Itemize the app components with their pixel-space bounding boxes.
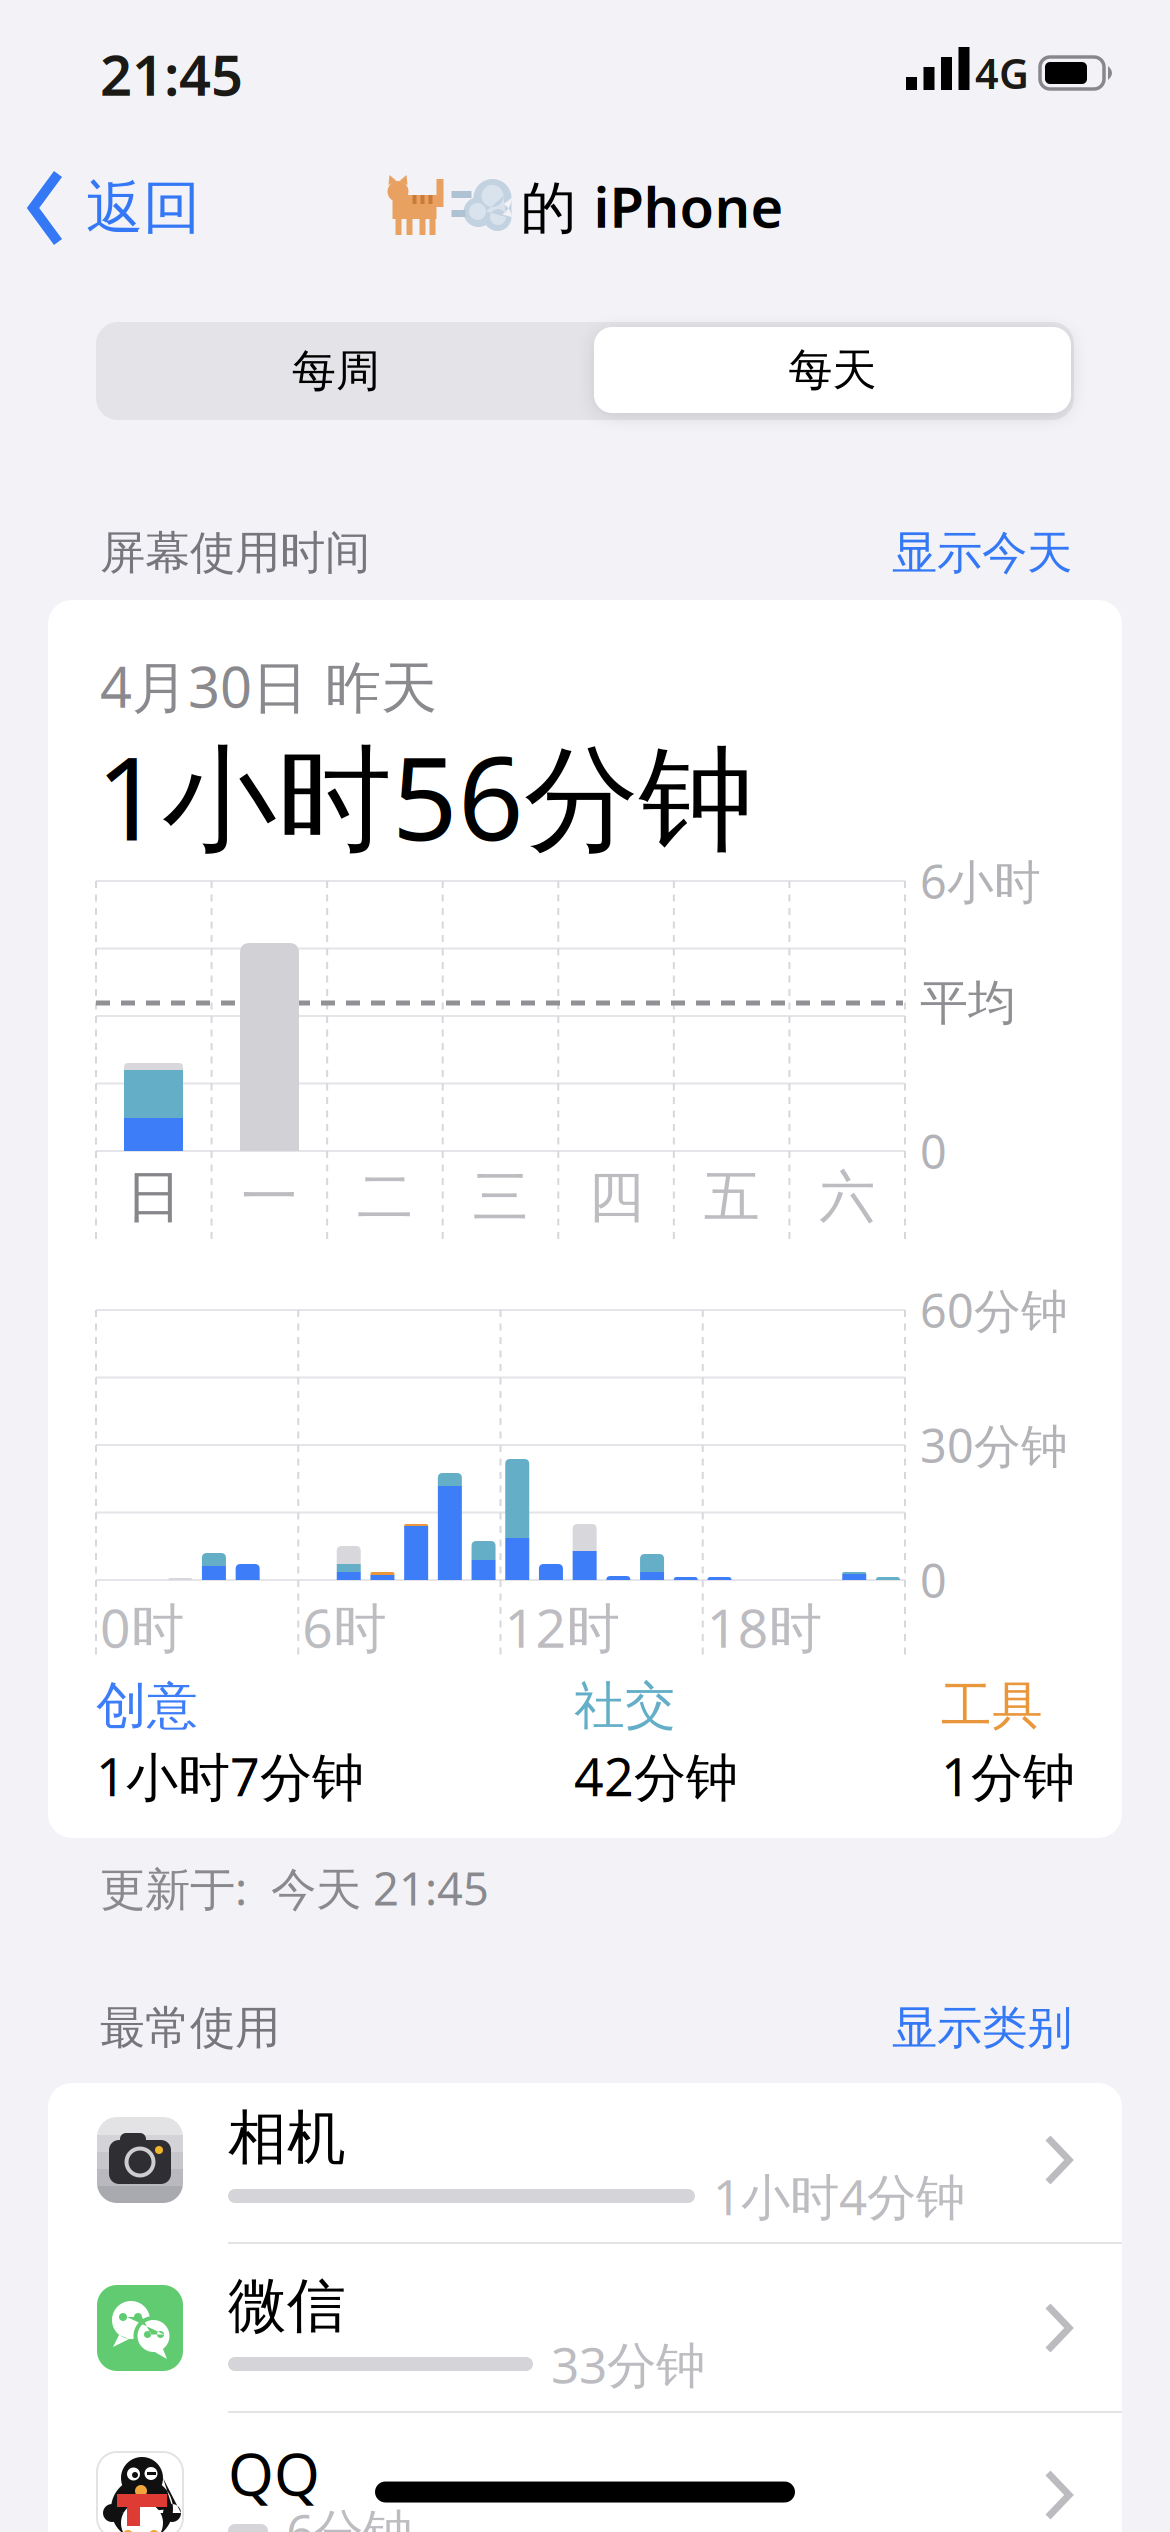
staticText: 平均 bbox=[920, 973, 1016, 1032]
staticText: QQ bbox=[228, 2434, 320, 2512]
button[interactable]: QQ bbox=[48, 2415, 1122, 2532]
staticText: 0 bbox=[920, 1120, 947, 1182]
staticText: 30分钟 bbox=[920, 1414, 1068, 1476]
button[interactable]: 每天 bbox=[594, 327, 1071, 413]
staticText: 4G bbox=[975, 46, 1029, 100]
staticText: 二 bbox=[357, 1163, 413, 1231]
staticText: 4月30日 昨天 bbox=[100, 649, 437, 723]
staticText: 6分钟 bbox=[286, 2498, 412, 2532]
staticText: 33分钟 bbox=[551, 2331, 705, 2397]
staticText: 显示今天 bbox=[892, 525, 1072, 581]
staticText: 1小时56分钟 bbox=[96, 720, 754, 872]
staticText: 社交 bbox=[574, 1675, 676, 1737]
staticText: 显示类别 bbox=[892, 2000, 1072, 2056]
staticText: 创意 bbox=[96, 1675, 198, 1737]
staticText: 一 bbox=[241, 1163, 297, 1231]
staticText: 日 bbox=[126, 1163, 182, 1231]
button[interactable]: 显示类别 bbox=[772, 2000, 1072, 2056]
staticText: 6小时 bbox=[920, 850, 1041, 912]
staticText: 12时 bbox=[504, 1592, 619, 1662]
button[interactable]: 显示今天 bbox=[772, 525, 1072, 581]
button[interactable]: 微信 bbox=[48, 2248, 1122, 2408]
staticText: 42分钟 bbox=[574, 1741, 738, 1811]
staticText: 的 iPhone bbox=[520, 169, 783, 243]
staticText: 1小时7分钟 bbox=[96, 1741, 364, 1811]
staticText: 6时 bbox=[302, 1592, 386, 1662]
button[interactable]: 每周 bbox=[96, 322, 576, 420]
button[interactable]: 返回 bbox=[28, 163, 258, 253]
staticText: 工具 bbox=[941, 1675, 1043, 1737]
button[interactable]: 相机 bbox=[48, 2080, 1122, 2240]
staticText: 60分钟 bbox=[920, 1279, 1068, 1341]
staticText: 相机 bbox=[228, 2102, 346, 2174]
staticText: 更新于: 今天 21:45 bbox=[100, 1858, 489, 1918]
staticText: 21:45 bbox=[100, 37, 243, 111]
staticText: 返回 bbox=[86, 173, 200, 243]
staticText: 六 bbox=[819, 1163, 875, 1231]
staticText: 0时 bbox=[100, 1592, 184, 1662]
staticText: 每天 bbox=[788, 343, 876, 397]
staticText: 三 bbox=[472, 1163, 528, 1231]
staticText: 1分钟 bbox=[941, 1741, 1075, 1811]
staticText: 微信 bbox=[228, 2270, 346, 2342]
staticText: 每周 bbox=[292, 344, 380, 398]
staticText: 四 bbox=[588, 1163, 644, 1231]
staticText: 1小时4分钟 bbox=[713, 2163, 965, 2229]
staticText: 18时 bbox=[707, 1592, 822, 1662]
staticText: 五 bbox=[704, 1163, 760, 1231]
staticText: 0 bbox=[920, 1549, 947, 1611]
staticText: 屏幕使用时间 bbox=[100, 525, 370, 581]
staticText: 最常使用 bbox=[100, 2000, 280, 2056]
